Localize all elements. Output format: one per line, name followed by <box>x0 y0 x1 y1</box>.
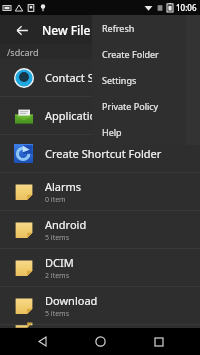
staticText: Refresh <box>102 22 135 34</box>
staticText: Create Shortcut Folder <box>45 146 162 161</box>
button[interactable]: Android <box>0 211 200 248</box>
button[interactable]: Create Folder <box>92 41 186 67</box>
button[interactable]: Home <box>83 328 117 355</box>
button[interactable]: Download <box>0 287 200 324</box>
button[interactable]: Navigate up <box>9 17 35 43</box>
button[interactable]: Settings <box>92 67 186 93</box>
staticText: Create Folder <box>102 48 159 60</box>
staticText: 10:06 <box>176 2 197 13</box>
button[interactable]: /sdcard <box>0 44 200 59</box>
staticText: 5 items <box>45 309 70 319</box>
staticText: Alarms <box>45 179 82 194</box>
staticText: Settings <box>102 74 137 86</box>
button[interactable]: Help <box>92 119 186 145</box>
staticText: Download <box>45 293 98 308</box>
staticText: New File Explorer <box>42 22 142 38</box>
button[interactable]: Private Policy <box>92 93 186 119</box>
button[interactable]: Recent apps <box>142 328 176 355</box>
staticText: 0 item <box>45 195 66 205</box>
button[interactable]: DCIM <box>0 249 200 286</box>
staticText: /sdcard <box>7 46 39 58</box>
button[interactable]: Alarms <box>0 173 200 210</box>
button[interactable]: Contact Shortcut <box>0 59 200 96</box>
staticText: Contact Shortcut <box>45 70 132 85</box>
button[interactable]: Movies <box>0 325 200 328</box>
staticText: 2 items <box>45 271 70 281</box>
staticText: Help <box>102 126 122 138</box>
staticText: DCIM <box>45 255 74 270</box>
button[interactable]: Create Shortcut Folder <box>0 135 200 172</box>
staticText: Android <box>45 217 87 232</box>
button[interactable]: Application <box>0 97 200 134</box>
button[interactable]: Back <box>25 328 59 355</box>
staticText: Application <box>45 108 103 123</box>
staticText: Private Policy <box>102 100 159 112</box>
staticText: 5 items <box>45 233 70 243</box>
button[interactable]: Refresh <box>92 15 186 41</box>
